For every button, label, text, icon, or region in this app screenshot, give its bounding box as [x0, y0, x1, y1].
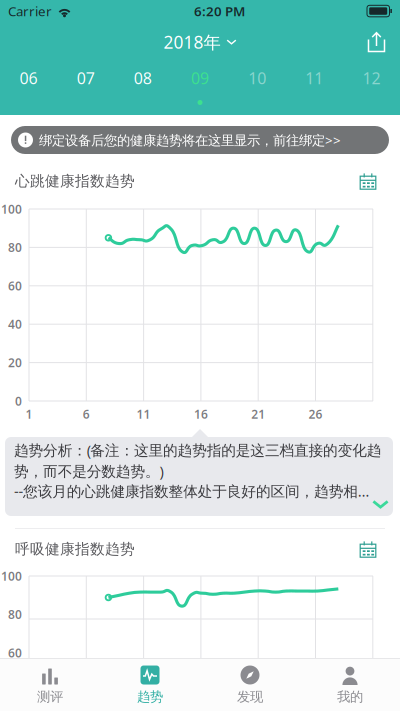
button[interactable]: Expand [368, 496, 393, 512]
button[interactable]: 07 [57, 64, 114, 115]
staticText: 80 [8, 239, 22, 255]
staticText: 0 [15, 393, 22, 409]
button[interactable]: 12 [343, 64, 400, 115]
button[interactable]: 发现 [200, 658, 300, 710]
button[interactable]: 我的 [300, 658, 400, 710]
staticText: 07 [77, 67, 95, 89]
staticText: 绑定设备后您的健康趋势将在这里显示，前往绑定>> [39, 131, 341, 149]
button[interactable]: 09 [171, 64, 228, 115]
staticText: 心跳健康指数趋势 [15, 172, 135, 190]
button[interactable]: 测评 [0, 658, 100, 710]
staticText: 100 [1, 201, 22, 217]
staticText: 趋势 [137, 688, 163, 705]
staticText: 11 [305, 67, 323, 89]
button[interactable]: Calendar [356, 537, 380, 561]
staticText: 呼吸健康指数趋势 [15, 540, 135, 558]
staticText: 6:20 PM [194, 2, 245, 20]
staticText: 1 [25, 406, 32, 422]
staticText: 测评 [37, 688, 63, 705]
button[interactable]: 11 [286, 64, 343, 115]
button[interactable]: 2018年 [153, 22, 246, 61]
staticText: 40 [8, 316, 22, 332]
staticText: 趋势分析：(备注：这里的趋势指的是这三档直接的变化趋 [14, 440, 382, 460]
staticText: 80 [8, 606, 22, 622]
staticText: 发现 [237, 688, 263, 705]
staticText: 09 [191, 67, 209, 89]
staticText: 08 [134, 67, 152, 89]
button[interactable]: 趋势 [100, 658, 200, 710]
staticText: 20 [8, 355, 22, 370]
button[interactable]: 08 [114, 64, 171, 115]
staticText: 6 [83, 406, 90, 422]
staticText: 06 [20, 67, 38, 89]
staticText: --您该月的心跳健康指数整体处于良好的区间，趋势相… [14, 481, 370, 501]
staticText: 16 [194, 406, 208, 422]
button[interactable]: 绑定设备后您的健康趋势将在这里显示，前往绑定>> [11, 126, 389, 154]
staticText: Carrier [8, 2, 52, 20]
staticText: 100 [1, 568, 22, 584]
button[interactable]: 10 [229, 64, 286, 115]
staticText: 我的 [337, 688, 363, 705]
button[interactable]: Share [363, 26, 390, 57]
staticText: 26 [308, 406, 322, 422]
button[interactable]: Calendar [356, 169, 380, 193]
staticText: 2018年 [163, 30, 220, 53]
staticText: 60 [8, 645, 22, 661]
staticText: 60 [8, 278, 22, 294]
staticText: 12 [362, 67, 380, 89]
staticText: 21 [251, 406, 265, 422]
staticText: 势，而不是分数趋势。) [14, 461, 163, 481]
staticText: 11 [137, 406, 151, 422]
button[interactable]: 06 [0, 64, 57, 115]
staticText: 10 [248, 67, 266, 89]
